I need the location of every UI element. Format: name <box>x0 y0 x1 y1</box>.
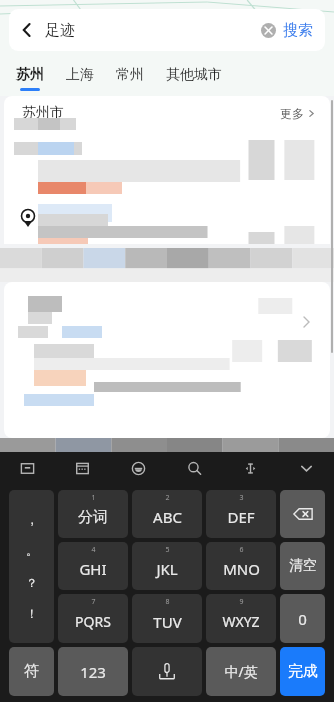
button[interactable]: 搜索 <box>283 21 313 40</box>
staticText: ？ <box>26 575 38 590</box>
staticText: 7 <box>91 597 96 607</box>
staticText: 上海 <box>66 66 94 84</box>
staticText: 5 <box>165 545 170 555</box>
staticText: 9 <box>239 597 244 607</box>
button[interactable]: Keyboard layout <box>0 452 55 484</box>
button[interactable]: Backspace <box>280 490 325 538</box>
staticText: ABC <box>153 507 182 527</box>
button[interactable] <box>4 282 330 438</box>
button[interactable]: 苏州市 <box>4 96 330 244</box>
staticText: 0 <box>298 609 307 629</box>
staticText: 2 <box>165 493 170 503</box>
staticText: 分词 <box>78 508 108 527</box>
button[interactable]: 8 <box>132 594 202 643</box>
staticText: PQRS <box>75 612 111 631</box>
button[interactable]: 3 <box>206 490 276 538</box>
button[interactable]: 中/英 <box>206 647 276 696</box>
staticText: 中/英 <box>224 662 258 681</box>
button[interactable]: Clipboard <box>55 452 110 484</box>
button[interactable]: 9 <box>206 594 276 643</box>
button[interactable]: 5 <box>132 542 202 590</box>
staticText: 4 <box>91 545 96 555</box>
staticText: 6 <box>239 545 244 555</box>
staticText: JKL <box>156 559 178 579</box>
staticText: 苏州市 <box>22 104 64 122</box>
button[interactable]: Hide keyboard <box>278 452 334 484</box>
staticText: 1 <box>91 493 96 503</box>
button[interactable]: Back <box>9 9 45 51</box>
button[interactable]: Voice input <box>132 647 202 696</box>
staticText: 搜索 <box>283 21 313 40</box>
staticText: DEF <box>227 507 255 527</box>
staticText: 更多 <box>280 106 304 121</box>
button[interactable]: Emoji <box>110 452 166 484</box>
button[interactable]: 7 <box>58 594 128 643</box>
staticText: 完成 <box>288 662 318 681</box>
staticText: 123 <box>80 662 106 682</box>
button[interactable]: 0 <box>280 594 325 643</box>
button[interactable]: Clear <box>253 15 283 45</box>
staticText: 清空 <box>289 557 317 575</box>
staticText: 苏州 <box>16 66 44 84</box>
staticText: TUV <box>153 612 182 632</box>
button[interactable]: 上海 <box>66 60 94 96</box>
button[interactable]: Move cursor <box>222 452 278 484</box>
staticText: 常州 <box>116 66 144 84</box>
button[interactable]: 1 <box>58 490 128 538</box>
button[interactable]: 2 <box>132 490 202 538</box>
staticText: 足迹 <box>45 21 253 40</box>
button[interactable]: 常州 <box>116 60 144 96</box>
button[interactable]: Search <box>166 452 222 484</box>
staticText: 。 <box>26 543 38 558</box>
staticText: GHI <box>79 559 107 579</box>
staticText: 符 <box>24 662 39 681</box>
button[interactable]: 其他城市 <box>166 60 222 96</box>
staticText: ， <box>26 512 38 527</box>
button[interactable]: Punctuation <box>9 490 54 643</box>
staticText: ！ <box>26 606 38 621</box>
button[interactable]: 清空 <box>280 542 325 590</box>
staticText: MNO <box>223 559 260 579</box>
button[interactable]: 完成 <box>280 647 325 696</box>
button[interactable]: 符 <box>9 647 54 696</box>
staticText: 其他城市 <box>166 66 222 84</box>
button[interactable]: 123 <box>58 647 128 696</box>
button[interactable]: 苏州 <box>16 60 44 96</box>
staticText: 8 <box>165 597 170 607</box>
button[interactable]: 4 <box>58 542 128 590</box>
staticText: 3 <box>239 493 244 503</box>
button[interactable]: 6 <box>206 542 276 590</box>
staticText: WXYZ <box>222 612 260 631</box>
